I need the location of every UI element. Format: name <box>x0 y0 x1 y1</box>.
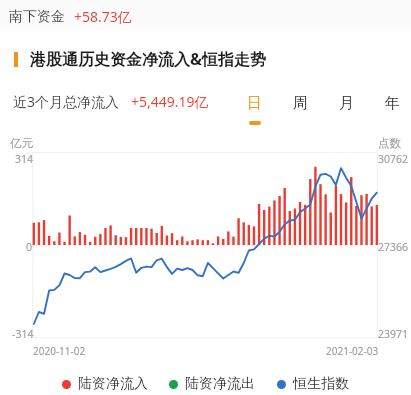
button[interactable]: 陆资净流入 <box>62 375 148 393</box>
button[interactable]: 年 <box>369 94 411 130</box>
staticText: 陆资净流入 <box>78 375 148 393</box>
staticText: 恒生指数 <box>293 375 349 393</box>
staticText: 23971 <box>378 327 409 341</box>
staticText: 亿元 <box>10 136 33 150</box>
button[interactable]: 恒生指数 <box>277 375 349 393</box>
staticText: +58.73亿 <box>74 7 132 26</box>
staticText: 2021-02-03 <box>326 344 379 358</box>
staticText: -314 <box>12 327 34 341</box>
staticText: 近3个月总净流入 <box>13 92 120 111</box>
staticText: 周 <box>293 94 308 113</box>
staticText: 27366 <box>378 240 409 254</box>
staticText: 月 <box>339 94 354 113</box>
button[interactable]: 月 <box>323 94 369 130</box>
button[interactable]: 周 <box>277 94 323 130</box>
staticText: 南下资金 <box>9 8 65 26</box>
staticText: 0 <box>26 240 33 254</box>
staticText: 点数 <box>378 136 401 150</box>
staticText: 30762 <box>378 152 409 166</box>
staticText: 港股通历史资金净流入&恒指走势 <box>30 48 267 70</box>
staticText: 陆资净流出 <box>185 375 255 393</box>
staticText: 日 <box>247 94 262 113</box>
staticText: 314 <box>15 152 34 166</box>
staticText: 2020-11-02 <box>33 344 86 358</box>
staticText: 年 <box>385 94 400 113</box>
button[interactable]: 陆资净流出 <box>169 375 255 393</box>
staticText: +5,449.19亿 <box>131 92 209 111</box>
button[interactable]: 日 <box>231 94 277 130</box>
